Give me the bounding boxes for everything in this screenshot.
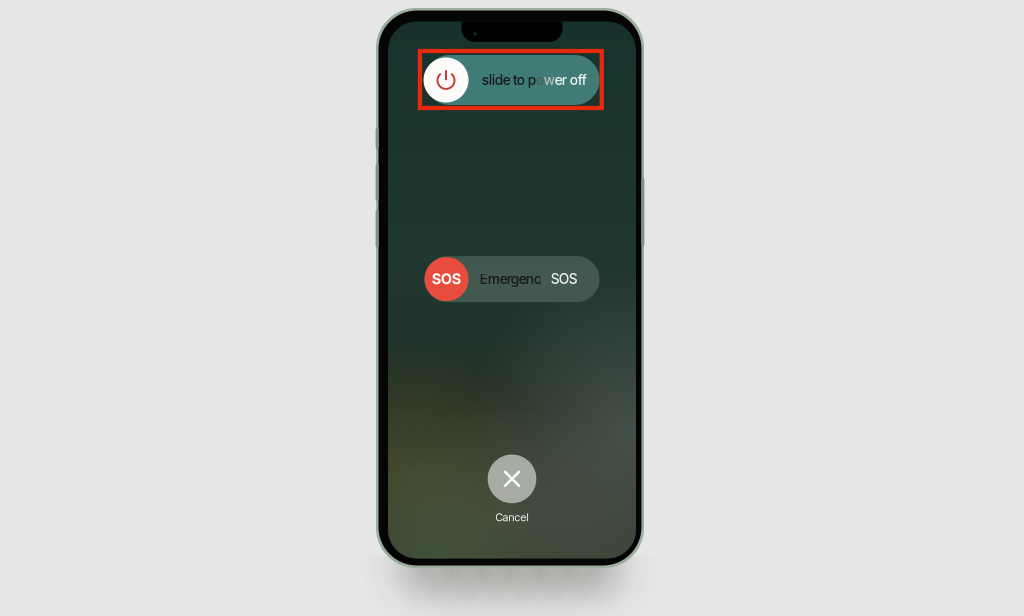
button[interactable]: Cancel (477, 454, 547, 524)
staticText: slide to p (482, 72, 536, 88)
staticText: w (544, 72, 555, 88)
staticText: Emergenc (480, 271, 541, 287)
staticText: o (536, 72, 544, 88)
staticText: SOS (432, 270, 461, 288)
button[interactable]: Emergency SOS (424, 256, 599, 302)
staticText: er off (555, 72, 586, 88)
staticText: y (541, 271, 548, 287)
staticText: SOS (548, 271, 577, 287)
staticText: Cancel (495, 511, 528, 524)
button[interactable]: slide to power off (424, 55, 599, 105)
